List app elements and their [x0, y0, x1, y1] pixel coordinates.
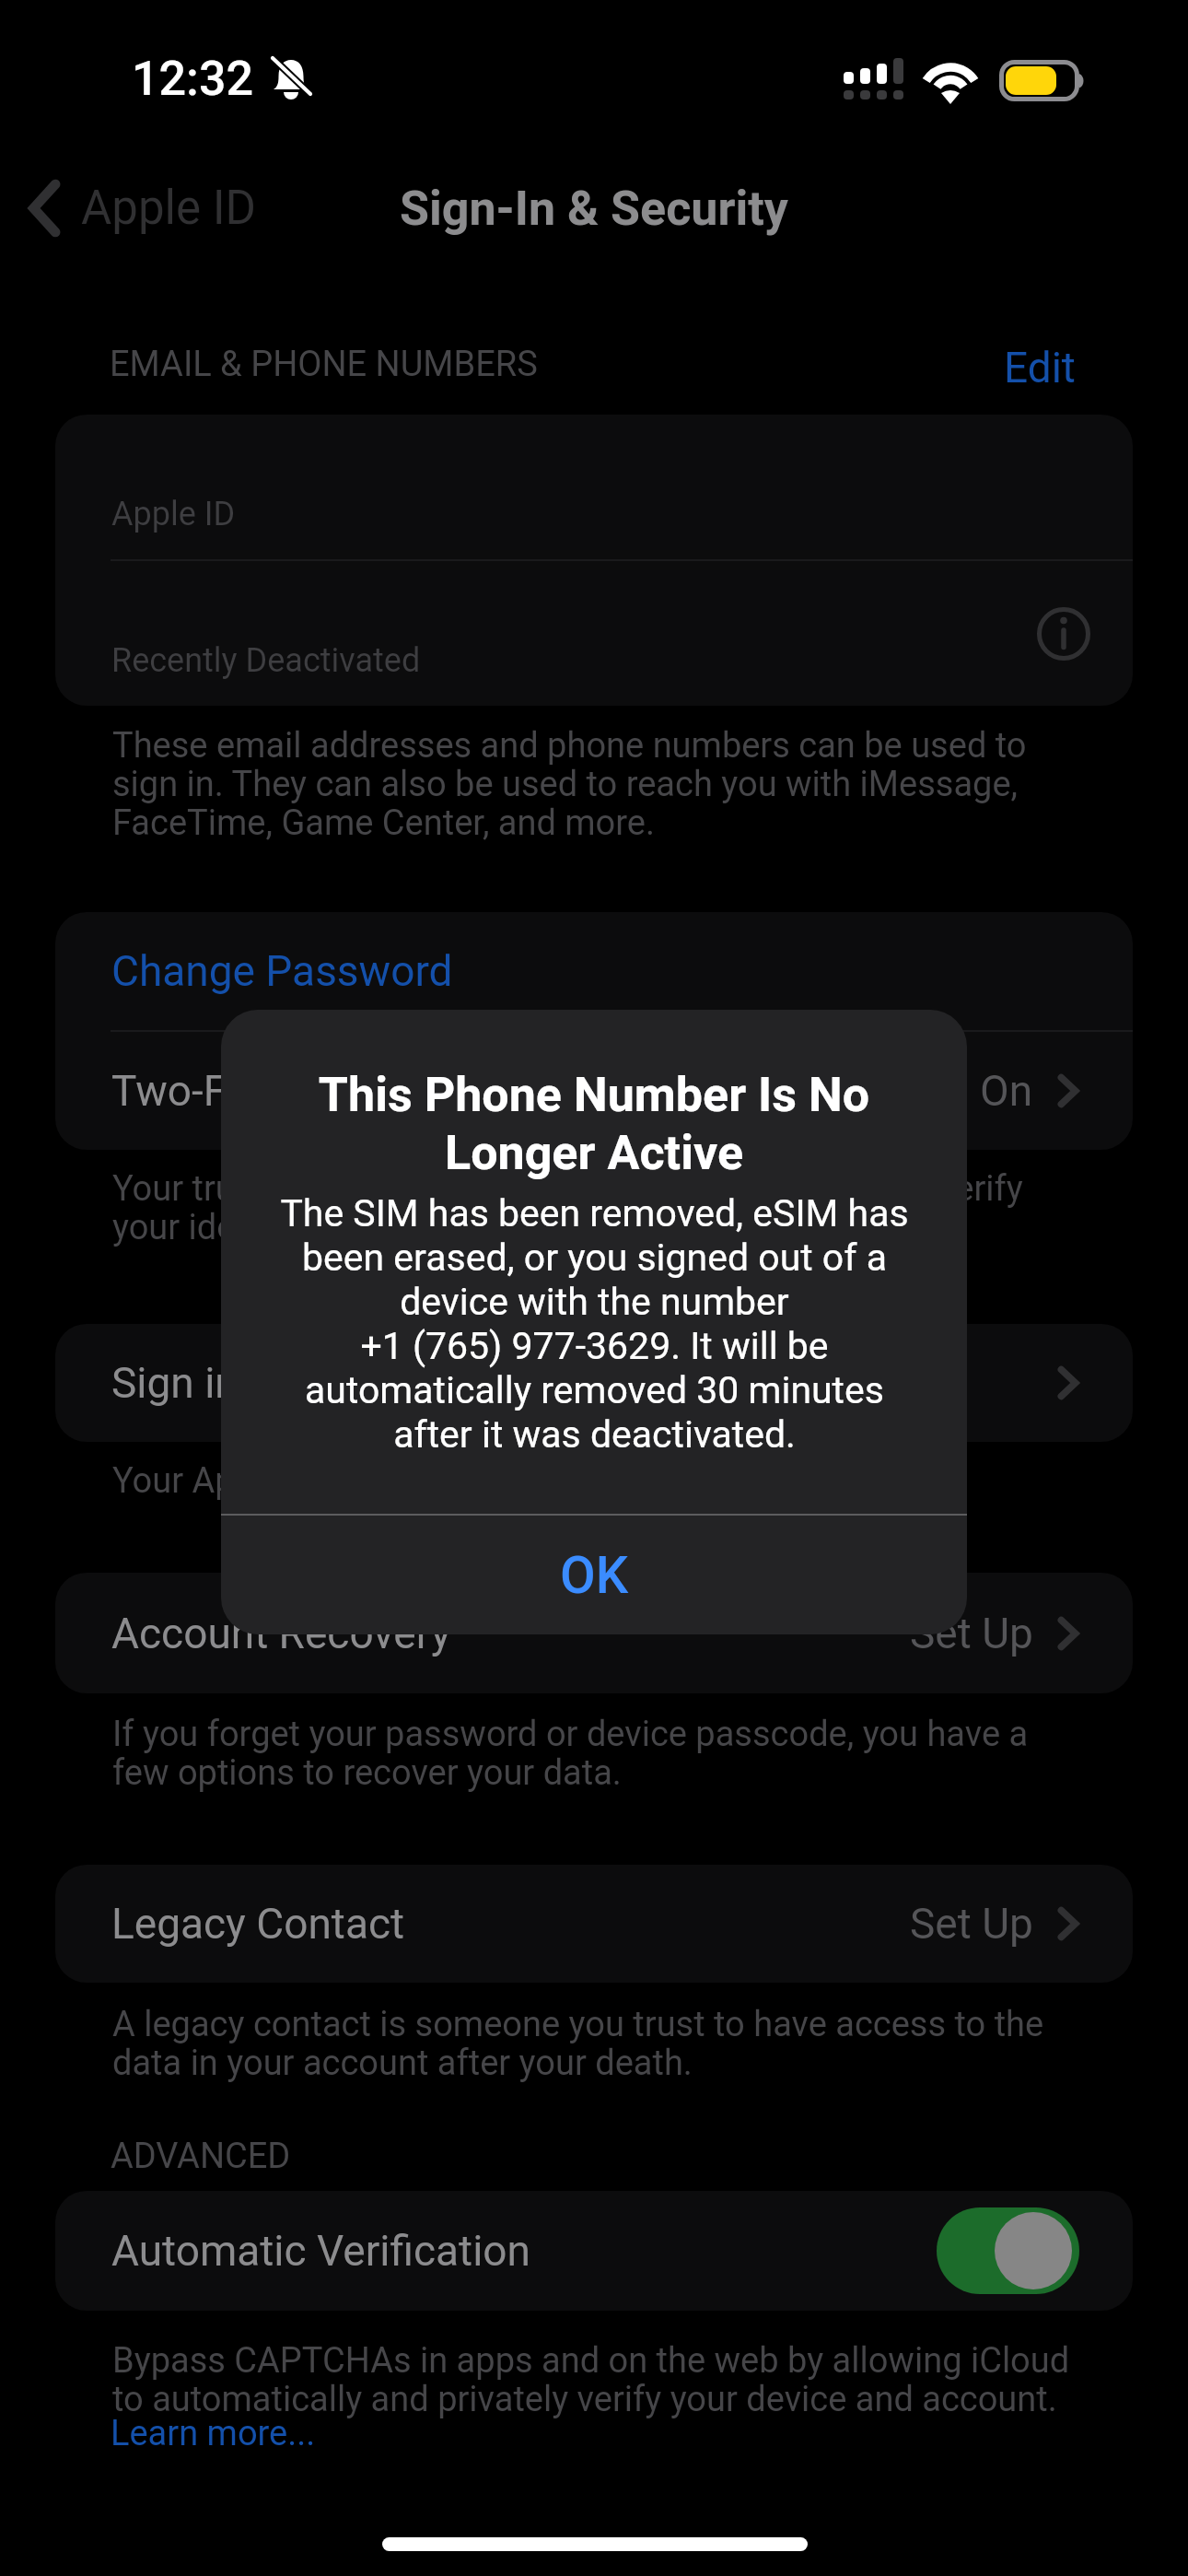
staticText: Set Up [910, 1609, 1033, 1658]
staticText: These email addresses and phone numbers … [112, 725, 1077, 844]
button[interactable]: Learn more... [111, 2413, 316, 2454]
button[interactable]: Sign in with Apple [55, 1324, 1133, 1442]
button[interactable]: Apple ID [17, 164, 271, 252]
staticText: ADVANCED [111, 2136, 291, 2177]
button[interactable]: Change Password [55, 912, 1133, 1030]
staticText: Edit [1004, 343, 1076, 392]
button[interactable]: Two-Factor Authentication [55, 1032, 1133, 1150]
button[interactable]: OK [221, 1516, 967, 1634]
button[interactable]: Automatic Verification [937, 2207, 1079, 2294]
staticText: Sign in with Apple [111, 1358, 447, 1408]
staticText: A legacy contact is someone you trust to… [112, 2004, 1077, 2084]
button[interactable]: Edit [1004, 343, 1076, 392]
staticText: OK [560, 1545, 628, 1606]
button[interactable]: Recently Deactivated [55, 561, 1133, 706]
staticText: Sign-In & Security [400, 181, 788, 237]
staticText: Legacy Contact [111, 1899, 405, 1949]
staticText: Apple ID [81, 181, 256, 236]
staticText: Automatic Verification [111, 2226, 530, 2276]
staticText: On [980, 1066, 1033, 1116]
staticText: Your trusted devices and phone numbers a… [112, 1168, 1077, 1248]
staticText: Apple ID [111, 495, 236, 533]
staticText: The SIM has been removed, eSIM has been … [280, 1191, 909, 1457]
staticText: Change Password [111, 946, 453, 996]
staticText: Recently Deactivated [111, 641, 421, 680]
staticText: 12:32 [132, 51, 254, 107]
button[interactable]: Apple ID [55, 415, 1133, 559]
button[interactable]: Account Recovery [55, 1573, 1133, 1693]
staticText: EMAIL & PHONE NUMBERS [110, 344, 538, 385]
staticText: Your Apple ID is used with apps and webs… [112, 1460, 825, 1502]
button[interactable]: Legacy Contact [55, 1865, 1133, 1983]
staticText: Account Recovery [111, 1609, 451, 1658]
staticText: Set Up [910, 1899, 1033, 1949]
staticText: Two-Factor Authentication [111, 1066, 609, 1116]
button[interactable]: More info [1023, 593, 1104, 674]
staticText: Learn more... [111, 2413, 316, 2454]
staticText: If you forget your password or device pa… [112, 1714, 1077, 1794]
staticText: This Phone Number Is No Longer Active [249, 1067, 939, 1181]
button[interactable]: Automatic Verification [55, 2191, 1133, 2311]
staticText: Bypass CAPTCHAs in apps and on the web b… [112, 2340, 1089, 2420]
